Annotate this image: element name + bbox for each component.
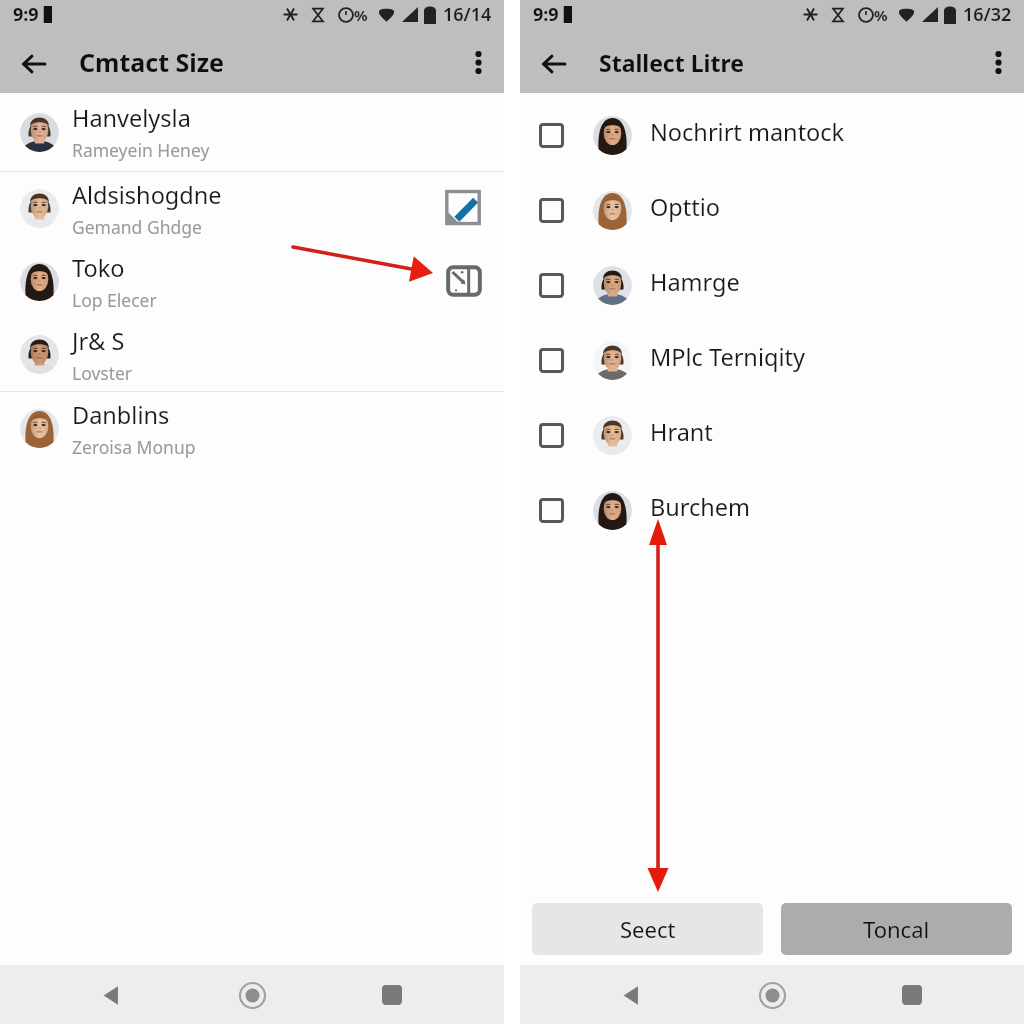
button[interactable]: Recents (369, 972, 415, 1018)
button[interactable]: Back (608, 972, 654, 1018)
button[interactable]: Edit (444, 188, 482, 226)
staticText: 16/32 (963, 2, 1012, 27)
button[interactable]: Hamrge (520, 248, 1024, 323)
button[interactable]: Danblins (0, 392, 504, 465)
button[interactable]: More options (456, 40, 500, 84)
button[interactable]: MPlc Terniqity (520, 323, 1024, 398)
button[interactable]: Back (532, 42, 576, 86)
staticText: % (874, 5, 888, 25)
button[interactable]: Opttio (520, 173, 1024, 248)
button[interactable]: Back (88, 972, 134, 1018)
staticText: Hamrge (650, 266, 740, 298)
staticText: 9:9 (13, 2, 39, 27)
staticText: Hrant (650, 416, 713, 448)
staticText: Danblins (72, 399, 170, 431)
staticText: % (354, 5, 368, 25)
button[interactable]: Resize (445, 262, 483, 300)
staticText: 16/14 (443, 2, 492, 27)
staticText: Opttio (650, 191, 721, 223)
button[interactable]: Hanvelysla (0, 93, 504, 171)
staticText: Seect (620, 914, 676, 944)
button[interactable]: Aldsishogdne (0, 172, 504, 245)
button[interactable]: Nochrirt mantock (520, 98, 1024, 173)
button[interactable]: Recents (889, 972, 935, 1018)
staticText: 9:9 (533, 2, 559, 27)
staticText: MPlc Terniqity (650, 341, 805, 373)
staticText: Cmtact Size (79, 45, 225, 79)
staticText: Burchem (650, 491, 751, 523)
button[interactable]: Back (12, 42, 56, 86)
staticText: Lop Elecer (72, 288, 157, 312)
staticText: Rameyein Heney (72, 138, 210, 162)
staticText: Jr& S (72, 325, 125, 357)
staticText: Nochrirt mantock (650, 116, 845, 148)
button[interactable]: Seect (532, 903, 763, 955)
staticText: Toncal (863, 914, 930, 944)
staticText: Hanvelysla (72, 102, 191, 134)
button[interactable]: Home (229, 972, 275, 1018)
button[interactable]: Toncal (781, 903, 1012, 955)
button[interactable]: Toko (0, 245, 504, 318)
staticText: Toko (72, 252, 125, 284)
staticText: Gemand Ghdge (72, 215, 202, 239)
staticText: Lovster (72, 361, 133, 385)
button[interactable]: Hrant (520, 398, 1024, 473)
button[interactable]: Burchem (520, 473, 1024, 548)
button[interactable]: More options (976, 40, 1020, 84)
staticText: Aldsishogdne (72, 179, 222, 211)
button[interactable]: Jr& S (0, 318, 504, 391)
staticText: Stallect Litre (599, 47, 744, 78)
button[interactable]: Home (749, 972, 795, 1018)
staticText: Zeroisa Monup (72, 435, 196, 459)
